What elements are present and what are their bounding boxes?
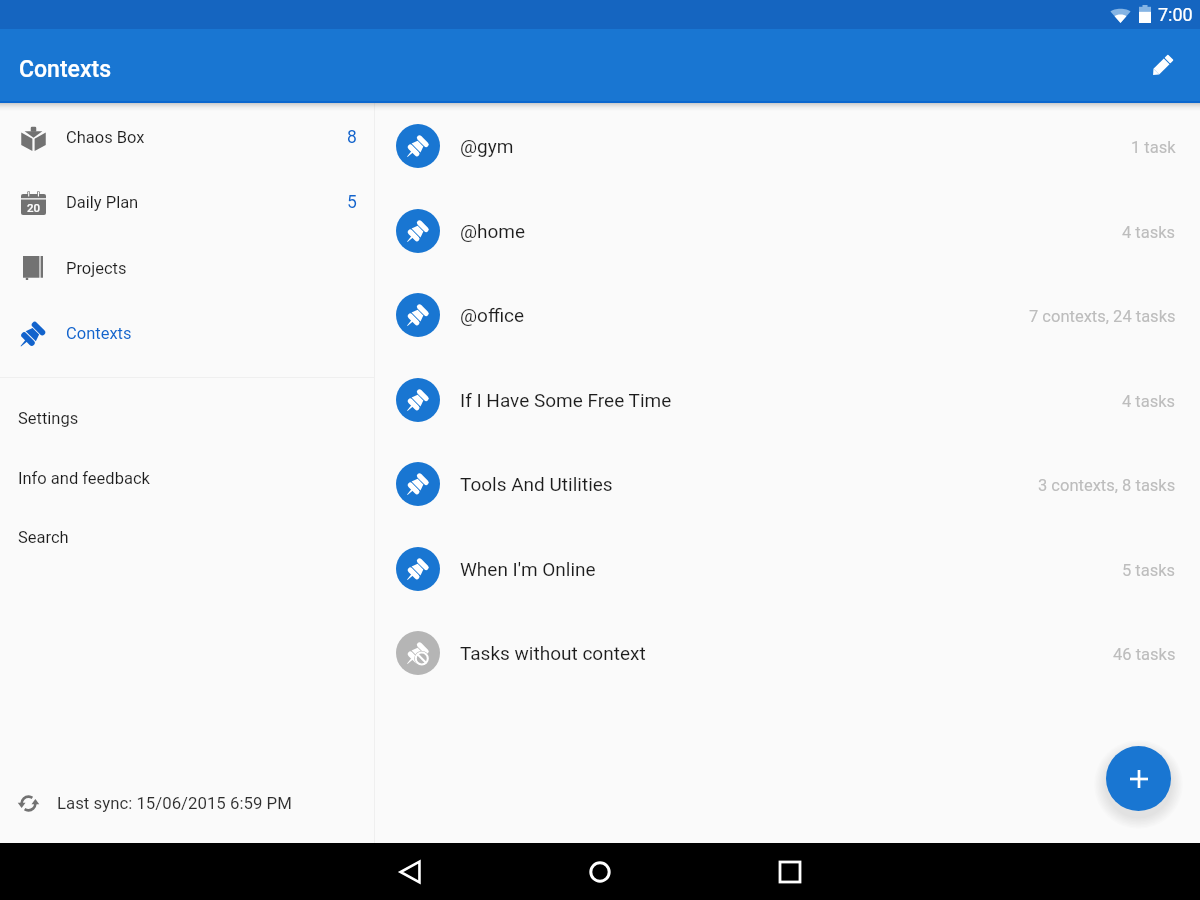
button[interactable]: @office [375, 272, 1200, 357]
button[interactable]: Recents [762, 843, 818, 900]
staticText: Settings [18, 409, 79, 428]
button[interactable]: Settings [0, 388, 374, 448]
button[interactable]: Projects [0, 236, 374, 302]
button[interactable]: Contexts [0, 301, 374, 367]
button[interactable]: 20 [0, 170, 374, 236]
staticText: Tasks without context [460, 642, 646, 664]
staticText: @gym [460, 135, 514, 157]
staticText: Chaos Box [66, 128, 145, 147]
staticText: 20 [27, 201, 41, 214]
staticText: Last sync: 15/06/2015 6:59 PM [57, 793, 292, 813]
button[interactable]: @home [375, 188, 1200, 273]
staticText: Projects [66, 259, 127, 278]
staticText: Tools And Utilities [460, 473, 613, 495]
button[interactable]: Add [1106, 746, 1171, 811]
staticText: 3 contexts, 8 tasks [1038, 476, 1176, 495]
staticText: 4 tasks [1122, 223, 1176, 242]
staticText: 8 [347, 127, 357, 148]
button[interactable]: Search [0, 507, 374, 567]
button[interactable]: Info and feedback [0, 448, 374, 508]
button[interactable]: If I Have Some Free Time [375, 357, 1200, 442]
staticText: 46 tasks [1113, 645, 1176, 664]
staticText: @home [460, 220, 526, 242]
staticText: Search [18, 528, 69, 547]
staticText: @office [460, 304, 525, 326]
button[interactable]: Back [382, 843, 438, 900]
staticText: When I'm Online [460, 558, 596, 580]
button[interactable]: @gym [375, 103, 1200, 188]
staticText: 4 tasks [1122, 392, 1176, 411]
staticText: 7 contexts, 24 tasks [1029, 307, 1176, 326]
button[interactable]: When I'm Online [375, 526, 1200, 611]
staticText: Contexts [66, 324, 132, 343]
staticText: 7:00 [1158, 4, 1193, 25]
button[interactable]: Tools And Utilities [375, 441, 1200, 526]
button[interactable]: Edit [1138, 42, 1186, 90]
staticText: 5 tasks [1122, 561, 1176, 580]
button[interactable]: Tasks without context [375, 610, 1200, 695]
staticText: Daily Plan [66, 193, 139, 212]
staticText: Contexts [19, 56, 112, 83]
staticText: 1 task [1131, 138, 1176, 157]
button[interactable]: Chaos Box [0, 105, 374, 171]
staticText: If I Have Some Free Time [460, 389, 672, 411]
staticText: 5 [347, 192, 357, 213]
button[interactable]: Last sync: 15/06/2015 6:59 PM [0, 771, 374, 835]
staticText: Info and feedback [18, 469, 150, 488]
button[interactable]: Home [572, 843, 628, 900]
